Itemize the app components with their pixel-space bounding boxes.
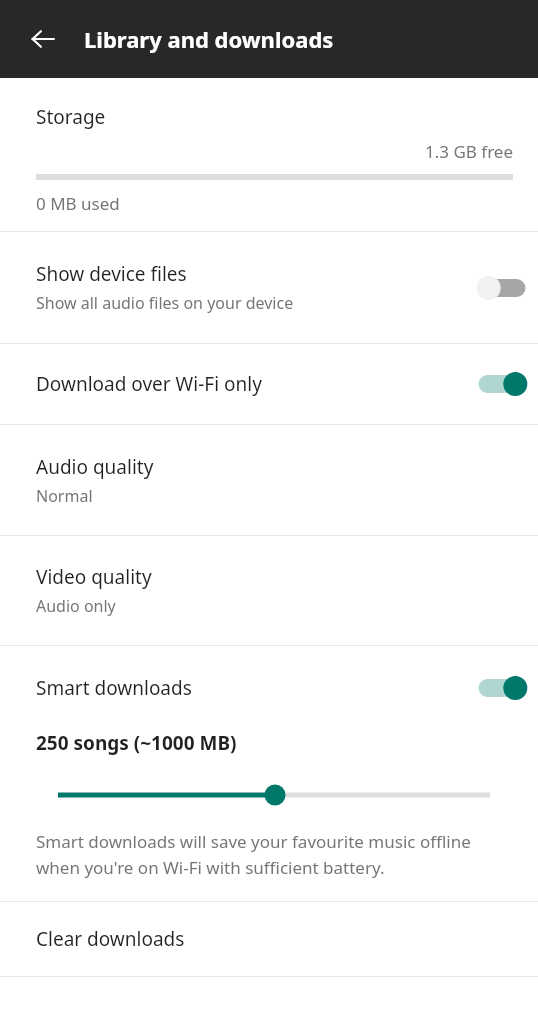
staticText: Storage xyxy=(36,104,106,130)
button[interactable]: Video quality xyxy=(0,536,538,645)
button[interactable]: Download over Wi-Fi only xyxy=(0,344,538,424)
staticText: 250 songs (~1000 MB) xyxy=(36,730,237,756)
staticText: Smart downloads will save your favourite… xyxy=(36,830,508,879)
staticText: Library and downloads xyxy=(84,24,334,54)
staticText: Download over Wi-Fi only xyxy=(36,371,262,397)
staticText: Clear downloads xyxy=(36,926,185,952)
button[interactable]: Audio quality xyxy=(0,425,538,535)
staticText: Show device files xyxy=(36,261,187,287)
staticText: Show all audio files on your device xyxy=(36,292,294,314)
staticText: Audio quality xyxy=(36,454,154,480)
button[interactable]: Show device files xyxy=(474,268,530,308)
staticText: Audio only xyxy=(36,595,116,617)
button[interactable]: Smart downloads xyxy=(474,668,530,708)
staticText: 1.3 GB free xyxy=(0,140,513,163)
button[interactable]: Show device files xyxy=(0,232,538,343)
staticText: Normal xyxy=(36,485,93,507)
staticText: 0 MB used xyxy=(36,192,120,215)
staticText: Video quality xyxy=(36,564,152,590)
button[interactable]: Back xyxy=(19,15,67,63)
staticText: Smart downloads xyxy=(36,675,192,701)
button[interactable]: Storage xyxy=(0,78,538,231)
button[interactable]: Smart downloads xyxy=(0,646,538,730)
button[interactable]: Smart downloads size xyxy=(0,778,538,812)
button[interactable]: Download over Wi-Fi only xyxy=(474,364,530,404)
button[interactable]: Clear downloads xyxy=(0,902,538,976)
